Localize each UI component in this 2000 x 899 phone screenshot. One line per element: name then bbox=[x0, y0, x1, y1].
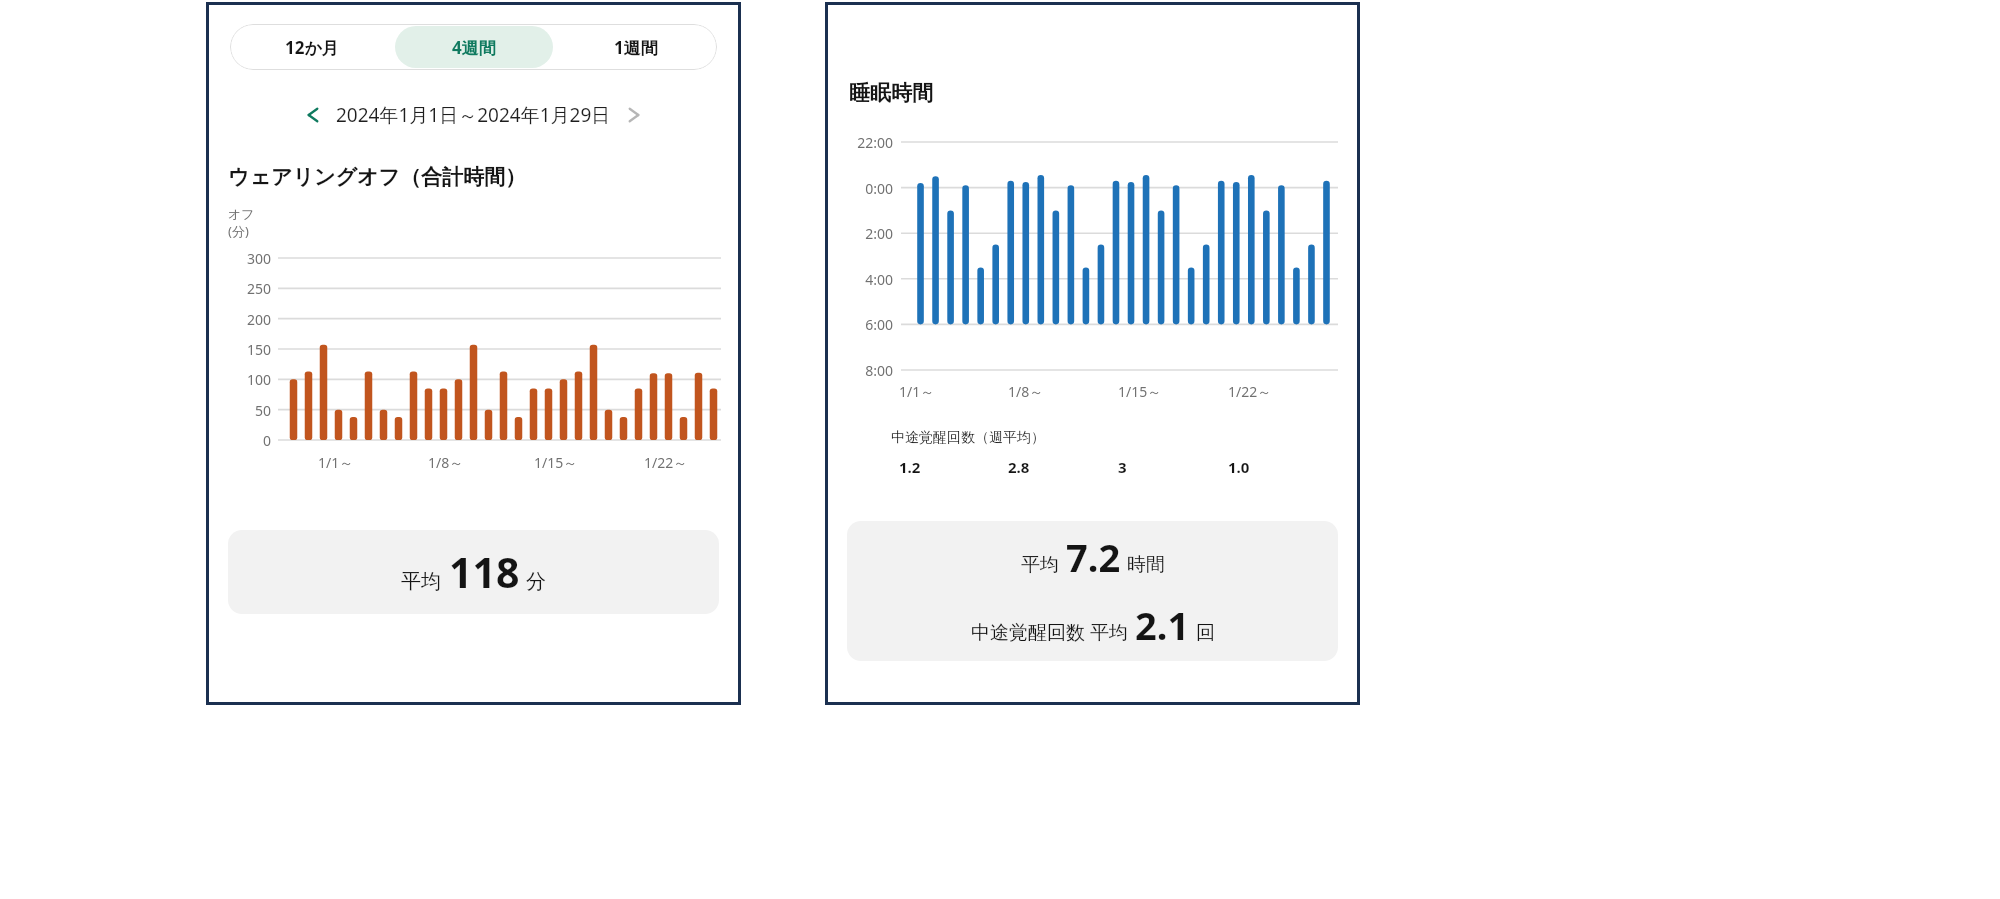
staticText: 1/8～ bbox=[428, 453, 464, 472]
staticText: 1/15～ bbox=[534, 453, 578, 472]
staticText: 2:00 bbox=[843, 224, 893, 242]
button[interactable]: 平均 bbox=[847, 521, 1338, 661]
staticText: 118 bbox=[449, 544, 520, 600]
button[interactable]: 次の期間 bbox=[615, 96, 653, 134]
staticText: 1/8～ bbox=[1008, 382, 1044, 401]
staticText: 1.2 bbox=[899, 457, 921, 477]
staticText: 時間 bbox=[1127, 553, 1165, 577]
staticText: 中途覚醒回数 平均 bbox=[971, 619, 1128, 645]
button[interactable]: 4週間 bbox=[395, 26, 553, 68]
staticText: 1/22～ bbox=[644, 453, 688, 472]
staticText: 3 bbox=[1118, 457, 1127, 477]
staticText: 100 bbox=[226, 370, 271, 388]
staticText: 6:00 bbox=[843, 315, 893, 333]
button[interactable]: 平均 bbox=[228, 530, 719, 614]
staticText: 平均 bbox=[401, 569, 441, 594]
staticText: 平均 bbox=[1021, 553, 1059, 577]
staticText: オフ bbox=[228, 206, 255, 222]
staticText: 0 bbox=[226, 431, 271, 449]
staticText: 2.1 bbox=[1135, 599, 1190, 651]
staticText: 1/15～ bbox=[1118, 382, 1162, 401]
staticText: 1.0 bbox=[1228, 457, 1250, 477]
staticText: 0:00 bbox=[843, 179, 893, 197]
staticText: ウェアリングオフ（合計時間） bbox=[228, 164, 526, 190]
staticText: 22:00 bbox=[843, 133, 893, 151]
staticText: 50 bbox=[226, 401, 271, 419]
staticText: 睡眠時間 bbox=[849, 80, 933, 106]
staticText: 300 bbox=[226, 249, 271, 267]
staticText: 12か月 bbox=[285, 36, 339, 59]
staticText: 7.2 bbox=[1066, 531, 1121, 583]
staticText: 中途覚醒回数（週平均） bbox=[891, 429, 1045, 447]
staticText: 4:00 bbox=[843, 270, 893, 288]
staticText: 200 bbox=[226, 310, 271, 328]
staticText: 2024年1月1日～2024年1月29日 bbox=[336, 102, 611, 128]
button[interactable]: 12か月 bbox=[232, 26, 391, 68]
staticText: 1/1～ bbox=[318, 453, 354, 472]
staticText: 8:00 bbox=[843, 361, 893, 379]
staticText: 1/1～ bbox=[899, 382, 935, 401]
staticText: (分) bbox=[228, 222, 249, 240]
staticText: 1/22～ bbox=[1228, 382, 1272, 401]
button[interactable]: 1週間 bbox=[557, 26, 715, 68]
staticText: 250 bbox=[226, 279, 271, 297]
staticText: 2.8 bbox=[1008, 457, 1030, 477]
staticText: 回 bbox=[1196, 621, 1215, 645]
staticText: 1週間 bbox=[614, 36, 658, 59]
staticText: 分 bbox=[526, 569, 546, 594]
staticText: 150 bbox=[226, 340, 271, 358]
button[interactable]: 前の期間 bbox=[294, 96, 332, 134]
staticText: 4週間 bbox=[452, 36, 496, 59]
